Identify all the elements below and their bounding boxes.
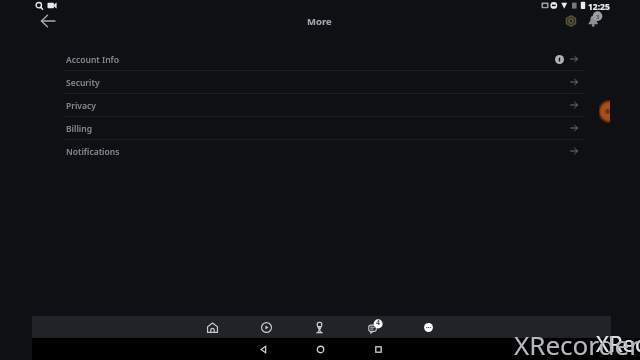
button[interactable]: Billing bbox=[0, 117, 640, 140]
button[interactable]: Messages bbox=[358, 316, 390, 338]
staticText: Billing bbox=[66, 123, 92, 135]
button[interactable]: Back bbox=[39, 12, 57, 30]
staticText: Privacy bbox=[66, 100, 96, 112]
staticText: Notifications bbox=[66, 146, 120, 158]
staticText: 12:25 bbox=[588, 1, 610, 13]
staticText: XRecorder bbox=[596, 328, 640, 358]
button[interactable]: Privacy bbox=[0, 94, 640, 117]
button[interactable]: Profile bbox=[303, 316, 335, 338]
staticText: More bbox=[307, 15, 332, 28]
staticText: XRecorder bbox=[514, 327, 640, 360]
button[interactable]: Security bbox=[0, 71, 640, 94]
button[interactable]: Play bbox=[250, 316, 282, 338]
staticText: 3 bbox=[596, 13, 600, 21]
button[interactable]: Notifications bbox=[586, 12, 602, 28]
button[interactable]: Notifications bbox=[0, 140, 640, 162]
button[interactable]: More bbox=[412, 316, 444, 338]
button[interactable]: Screen recorder bbox=[598, 99, 610, 125]
button[interactable]: Account Info bbox=[0, 48, 640, 71]
button[interactable]: Rewards bbox=[564, 14, 578, 28]
button[interactable]: Home bbox=[196, 316, 228, 338]
staticText: 4 bbox=[376, 318, 381, 328]
staticText: Account Info bbox=[66, 54, 119, 66]
staticText: Security bbox=[66, 77, 100, 89]
